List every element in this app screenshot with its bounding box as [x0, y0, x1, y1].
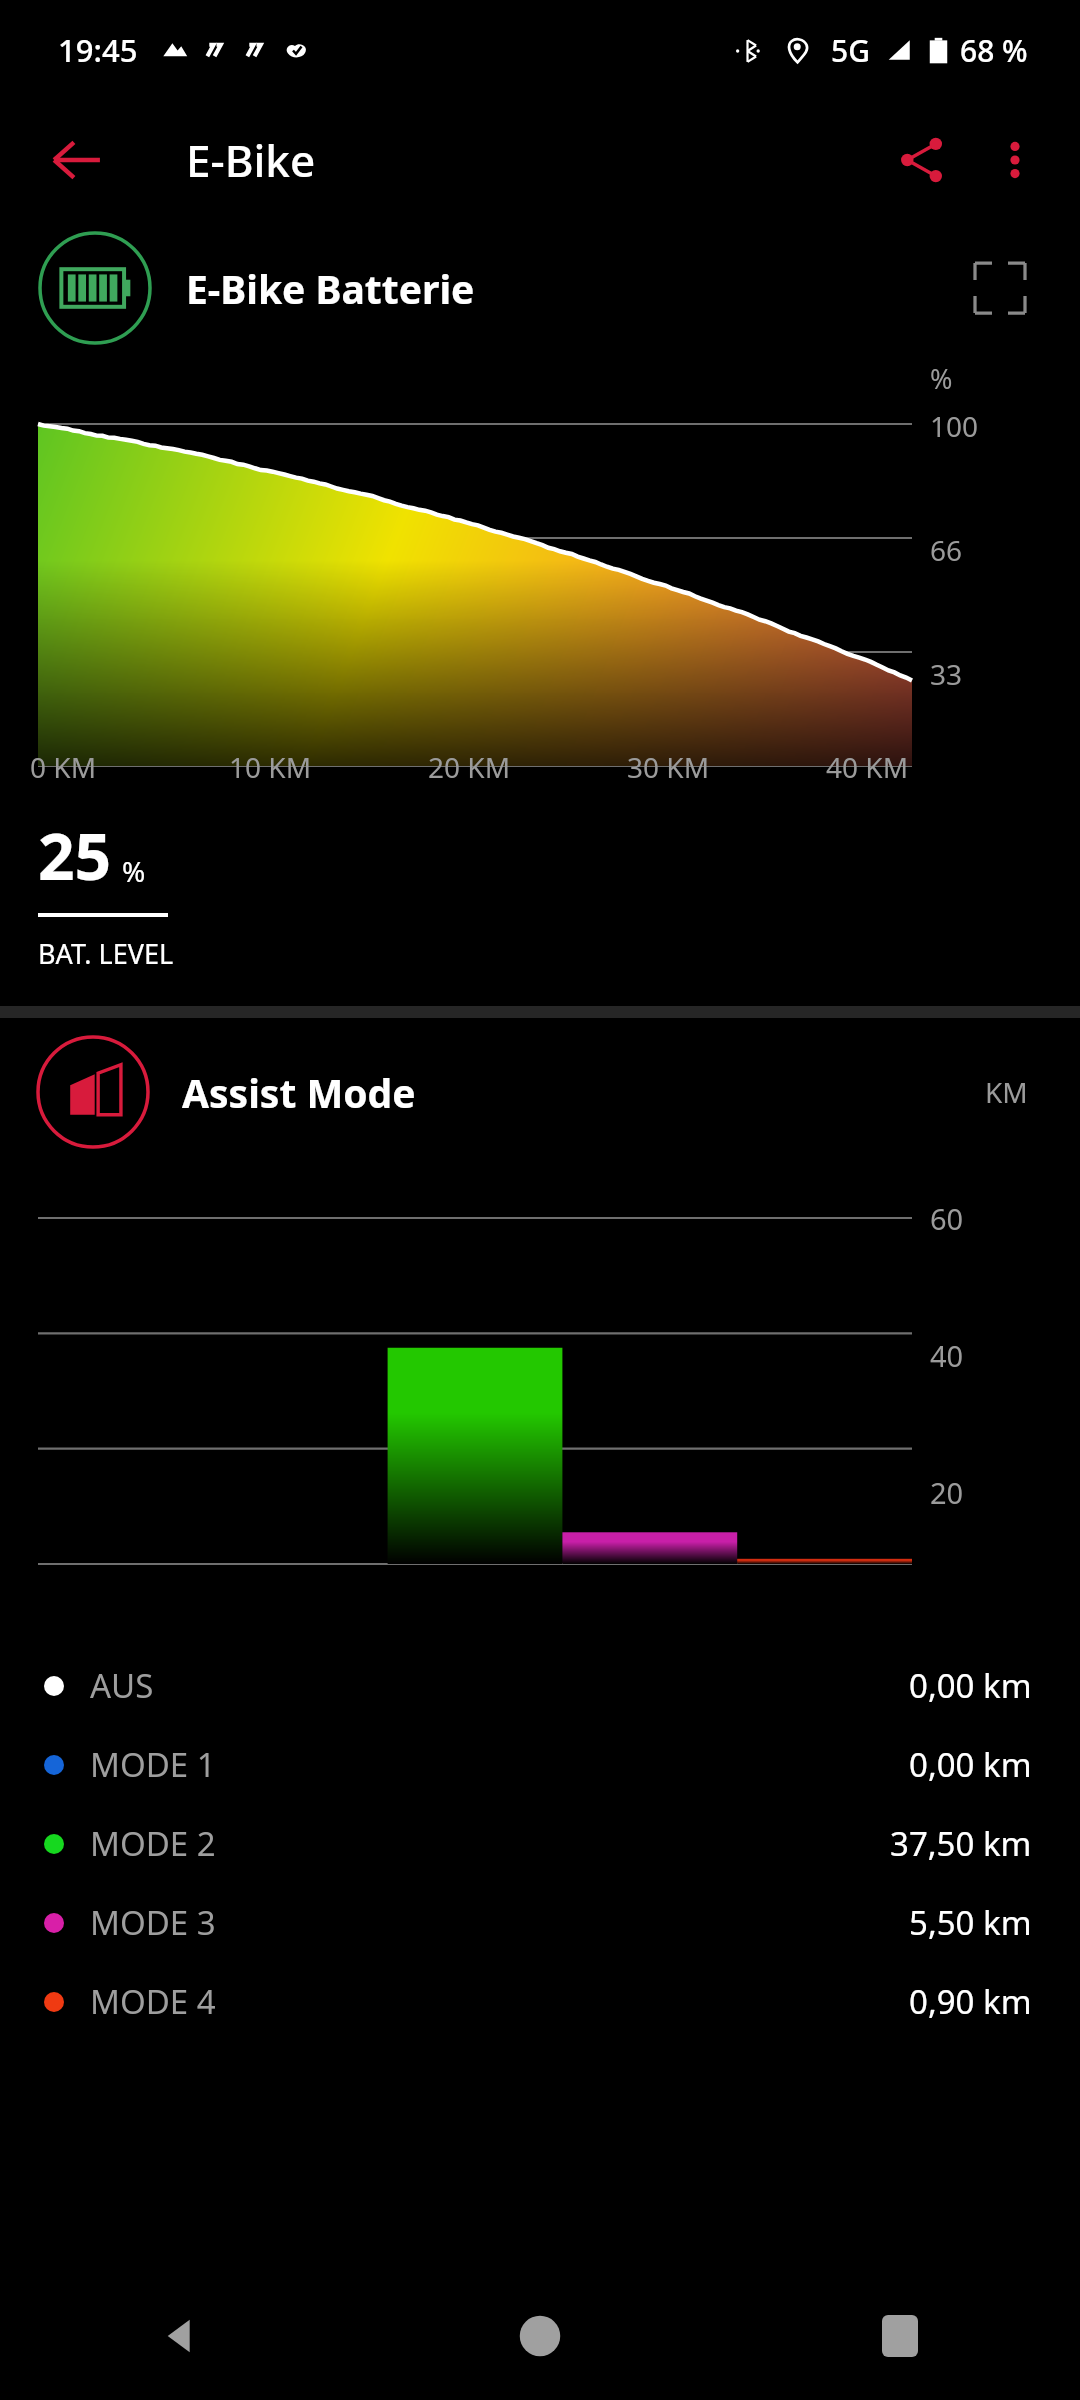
staticText: Assist Mode [182, 1066, 416, 1119]
staticText: E-Bike [186, 130, 316, 190]
button[interactable]: MODE 2 [0, 1804, 1080, 1883]
staticText: 30 KM [627, 748, 710, 786]
button[interactable]: More options [970, 115, 1060, 205]
button[interactable]: AUS [0, 1646, 1080, 1725]
button[interactable]: Assist Mode [0, 1018, 1080, 1166]
button[interactable]: Recent apps [720, 2272, 1080, 2400]
staticText: 0,00 km [909, 1742, 1032, 1787]
staticText: KM [985, 1073, 1028, 1111]
staticText: 100 [930, 407, 1035, 445]
staticText: MODE 3 [90, 1900, 216, 1945]
button[interactable]: Back [28, 112, 124, 208]
staticText: 66 [930, 531, 1035, 569]
staticText: 10 KM [229, 748, 312, 786]
button[interactable]: Expand chart [952, 240, 1048, 336]
staticText: 25 [38, 812, 112, 899]
staticText: % [930, 360, 1035, 397]
button[interactable]: Back [0, 2272, 360, 2400]
staticText: 60 [930, 1199, 1040, 1238]
button[interactable]: Share [874, 112, 970, 208]
staticText: 37,50 km [890, 1821, 1032, 1866]
staticText: % [122, 852, 146, 890]
staticText: 33 [930, 655, 1035, 693]
button[interactable]: MODE 4 [0, 1962, 1080, 2041]
staticText: 0,00 km [909, 1663, 1032, 1708]
staticText: 19:45 [58, 29, 138, 71]
staticText: 40 [930, 1336, 1040, 1375]
staticText: 68 % [960, 30, 1028, 71]
staticText: 0 KM [30, 748, 97, 786]
button[interactable]: E-Bike Batterie [0, 220, 1080, 356]
staticText: 40 KM [826, 748, 909, 786]
staticText: 20 KM [428, 748, 511, 786]
staticText: MODE 4 [90, 1979, 216, 2024]
staticText: BAT. LEVEL [38, 935, 174, 972]
staticText: MODE 2 [90, 1821, 216, 1866]
button[interactable]: MODE 3 [0, 1883, 1080, 1962]
button[interactable]: MODE 1 [0, 1725, 1080, 1804]
staticText: 20 [930, 1473, 1040, 1512]
staticText: AUS [90, 1663, 154, 1708]
staticText: MODE 1 [90, 1742, 216, 1787]
button[interactable]: Home [360, 2272, 720, 2400]
staticText: E-Bike Batterie [186, 262, 475, 315]
staticText: 5G [831, 30, 870, 71]
staticText: 5,50 km [909, 1900, 1032, 1945]
staticText: 0,90 km [909, 1979, 1032, 2024]
